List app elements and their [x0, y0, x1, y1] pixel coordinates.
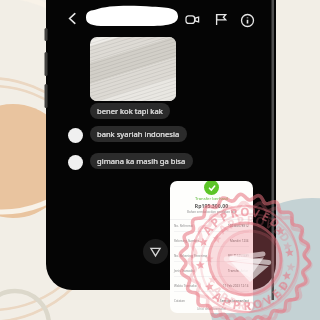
button[interactable]: bener kok tapi kak [90, 103, 170, 119]
staticText: Semoga bermanfaat [220, 299, 249, 303]
staticText: Jenis Transaksi [174, 269, 228, 273]
staticText: Catatan [174, 299, 220, 303]
button[interactable]: Scroll to bottom [143, 239, 168, 264]
staticText: Transfer berhasil [170, 196, 253, 202]
staticText: BSI 716253489 [228, 254, 249, 258]
staticText: Waktu Transaksi [174, 284, 223, 288]
staticText: Transfer Antar [228, 269, 249, 273]
staticText: bank syariah indonesia [97, 129, 180, 139]
staticText: Rp195.300,00 [170, 202, 253, 209]
button[interactable]: Transfer berhasil [170, 181, 253, 313]
staticText: Bahan sembako dan peralatan lain [170, 210, 253, 214]
staticText: 11 Feb 2023 12:14 [223, 284, 249, 288]
button[interactable]: bank syariah indonesia [90, 126, 187, 142]
button[interactable]: Back [62, 8, 82, 28]
staticText: No. Rekening Penerima [174, 254, 228, 258]
staticText: Lihat detail transaksi [170, 307, 253, 311]
button[interactable]: Video call [182, 9, 202, 29]
staticText: 102345678912 [228, 224, 249, 228]
button[interactable]: Info [237, 10, 257, 30]
staticText: No. Referensi [174, 224, 228, 228]
staticText: gimana ka masih ga bisa [97, 156, 186, 166]
button[interactable]: Flag [210, 9, 230, 29]
staticText: Rekening Sumber [174, 239, 230, 243]
staticText: bener kok tapi kak [97, 106, 163, 116]
button[interactable] [90, 37, 176, 101]
staticText: Mandiri 1234 [230, 239, 249, 243]
button[interactable]: gimana ka masih ga bisa [90, 153, 193, 169]
